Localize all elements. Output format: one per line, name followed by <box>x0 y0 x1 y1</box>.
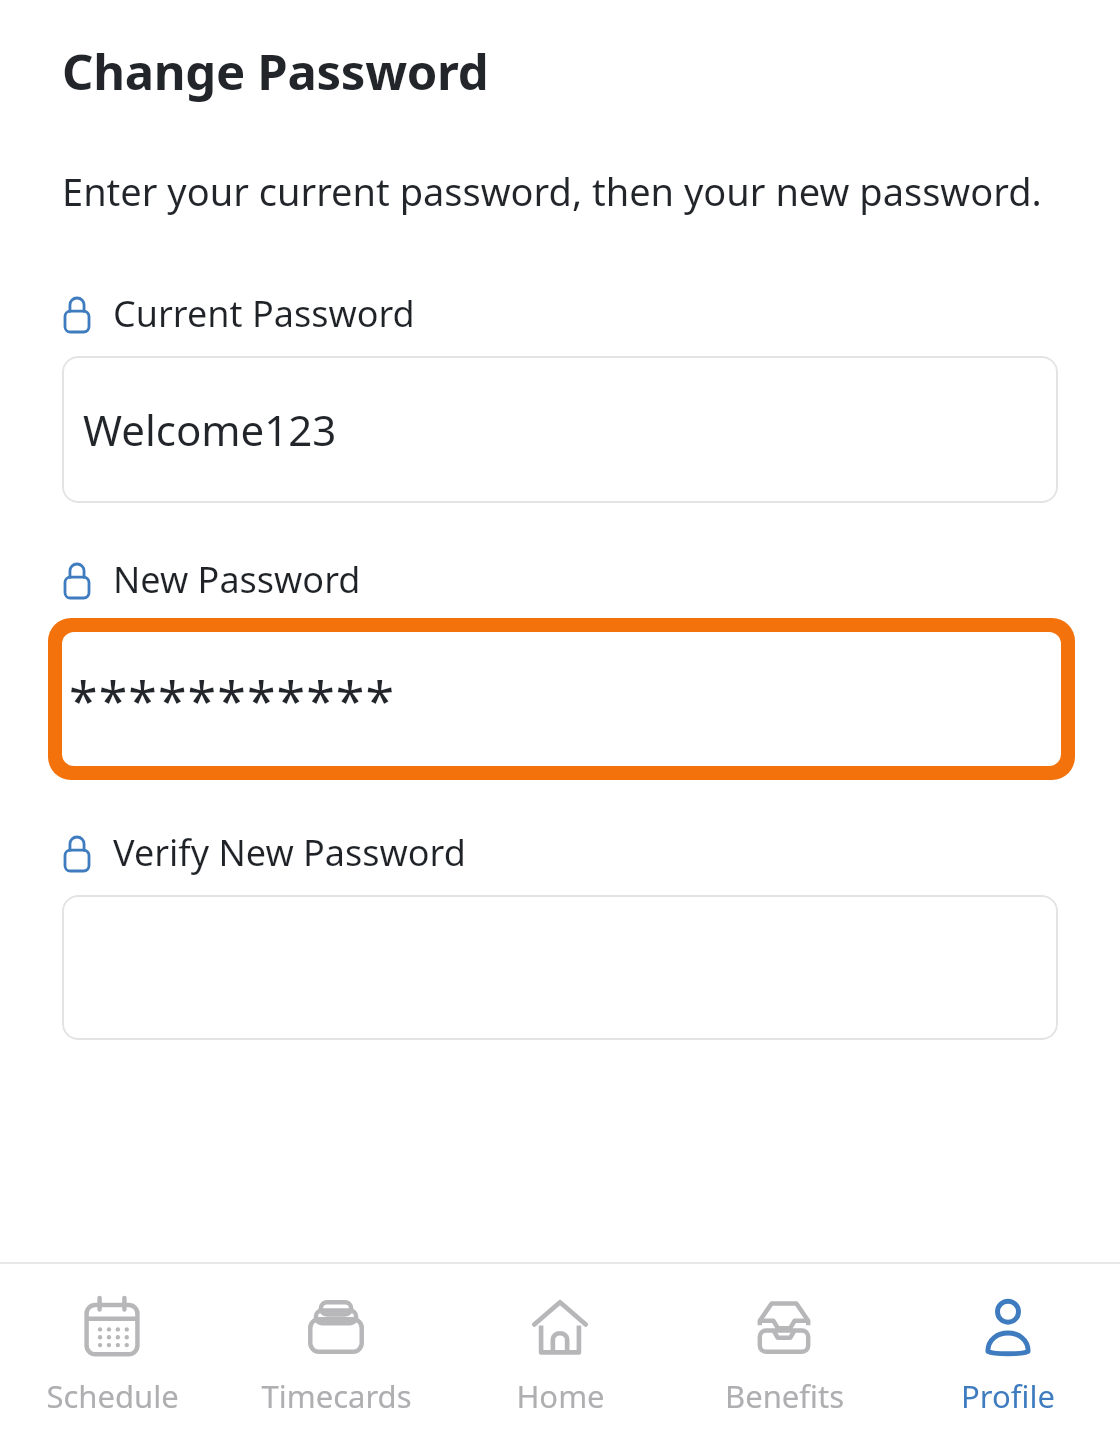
staticText: New Password <box>113 555 361 604</box>
button[interactable]: Welcome123 <box>62 356 1058 503</box>
staticText: Current Password <box>113 289 415 338</box>
staticText: Enter your current password, then your n… <box>62 165 1042 217</box>
staticText: Profile <box>961 1375 1055 1417</box>
staticText: Home <box>516 1375 605 1417</box>
button[interactable]: Profile <box>896 1264 1120 1417</box>
button[interactable]: Timecards <box>224 1264 448 1417</box>
staticText: Timecards <box>261 1375 412 1417</box>
staticText: Verify New Password <box>113 828 466 877</box>
button[interactable]: Schedule <box>0 1264 224 1417</box>
staticText: Schedule <box>46 1375 179 1417</box>
button[interactable] <box>62 895 1058 1040</box>
button[interactable]: Benefits <box>672 1264 896 1417</box>
button[interactable]: *********** <box>62 632 1061 766</box>
button[interactable]: Home <box>448 1264 672 1417</box>
staticText: Welcome123 <box>83 401 337 458</box>
staticText: Benefits <box>725 1375 844 1417</box>
staticText: Change Password <box>62 38 489 105</box>
staticText: *********** <box>69 664 396 735</box>
